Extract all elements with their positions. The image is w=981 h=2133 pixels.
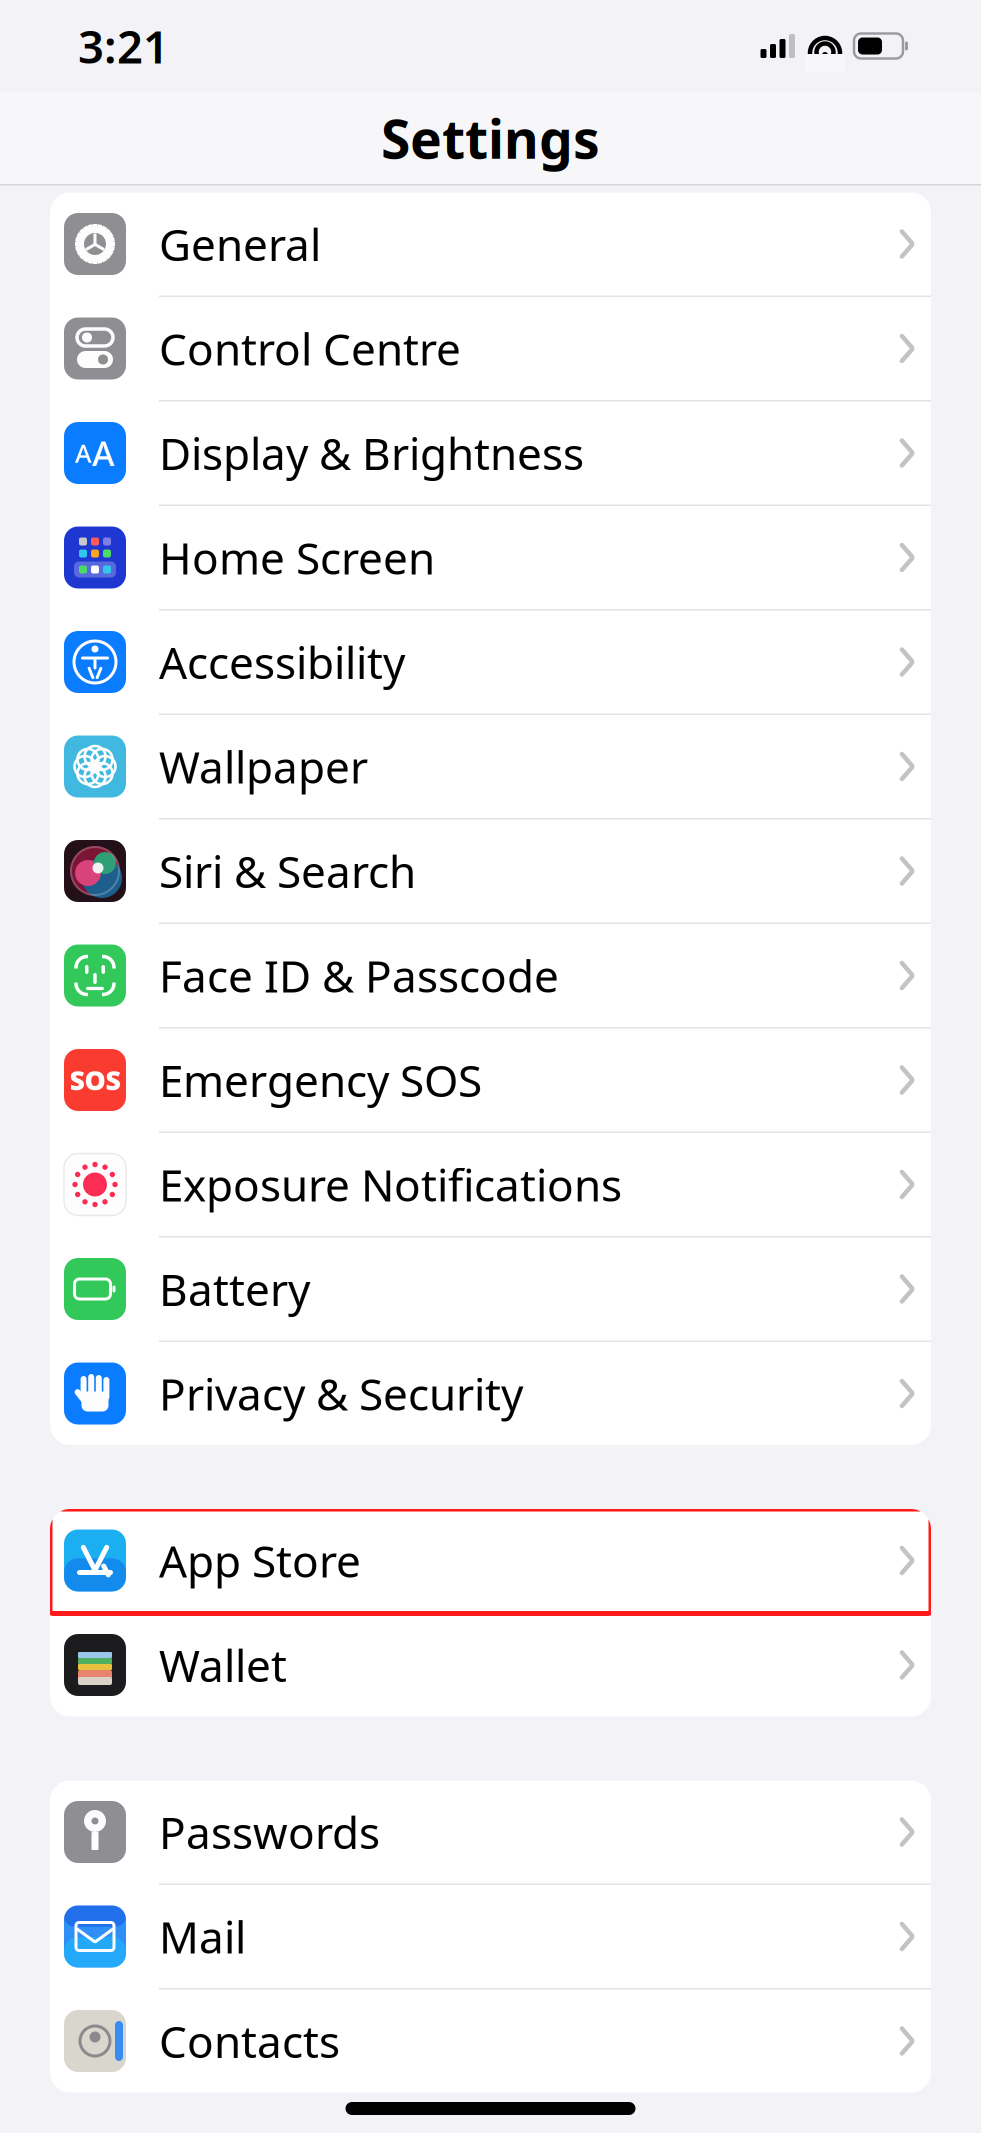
staticText: 3:21	[78, 16, 169, 76]
staticText: Display & Brightness	[159, 424, 584, 482]
staticText: A	[92, 430, 115, 476]
staticText: Accessibility	[159, 633, 405, 691]
staticText: Contacts	[159, 2012, 340, 2070]
staticText: Mail	[159, 1907, 246, 1966]
button[interactable]: App Store	[50, 1509, 931, 1613]
staticText: Control Centre	[159, 319, 461, 378]
button[interactable]: Face ID & Passcode	[50, 924, 931, 1028]
staticText: Wallpaper	[159, 737, 368, 796]
button[interactable]: Passwords	[50, 1780, 931, 1885]
button[interactable]: Mail	[50, 1885, 931, 1989]
button[interactable]: A	[50, 401, 931, 506]
staticText: Settings	[381, 103, 600, 173]
staticText: A	[75, 436, 92, 470]
button[interactable]: SOS	[50, 1028, 931, 1133]
staticText: Passwords	[159, 1803, 380, 1861]
button[interactable]: Home Screen	[50, 506, 931, 610]
button[interactable]: Contacts	[50, 1989, 931, 2092]
staticText: SOS	[69, 1062, 120, 1098]
button[interactable]: Control Centre	[50, 297, 931, 401]
staticText: Home Screen	[159, 528, 435, 587]
button[interactable]: Exposure Notifications	[50, 1133, 931, 1237]
button[interactable]: General	[50, 192, 931, 297]
staticText: Emergency SOS	[159, 1051, 482, 1109]
staticText: Siri & Search	[159, 842, 416, 900]
button[interactable]: Accessibility	[50, 610, 931, 715]
button[interactable]: Wallpaper	[50, 715, 931, 819]
staticText: Battery	[159, 1260, 310, 1318]
button[interactable]: Privacy & Security	[50, 1342, 931, 1445]
button[interactable]: Siri & Search	[50, 819, 931, 924]
button[interactable]: Battery	[50, 1237, 931, 1342]
staticText: Wallet	[159, 1636, 287, 1694]
staticText: App Store	[159, 1531, 361, 1590]
staticText: Face ID & Passcode	[159, 946, 559, 1005]
staticText: General	[159, 215, 321, 273]
staticText: Exposure Notifications	[159, 1155, 622, 1214]
staticText: Privacy & Security	[159, 1364, 523, 1423]
button[interactable]: Wallet	[50, 1613, 931, 1716]
